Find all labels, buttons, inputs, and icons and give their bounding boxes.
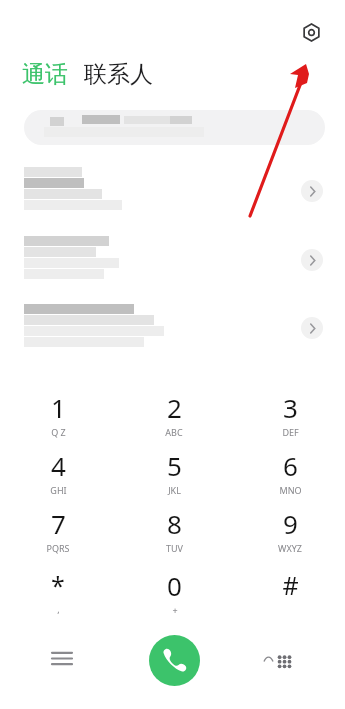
button[interactable]: 3 xyxy=(254,390,326,442)
staticText: WXYZ xyxy=(278,542,302,554)
button[interactable]: Call xyxy=(149,635,200,686)
staticText: , xyxy=(57,603,60,615)
staticText: * xyxy=(51,568,65,602)
button[interactable]: Details xyxy=(0,300,345,362)
staticText: 9 xyxy=(283,506,298,541)
button[interactable]: Hide keypad xyxy=(258,640,300,682)
staticText: DEF xyxy=(282,426,299,438)
button[interactable]: Menu xyxy=(42,638,82,678)
staticText: MNO xyxy=(279,484,302,496)
staticText: # xyxy=(282,568,299,602)
staticText: 3 xyxy=(283,390,298,425)
button[interactable]: Settings xyxy=(295,16,327,48)
button[interactable]: 2 xyxy=(138,390,210,442)
staticText: GHI xyxy=(50,484,67,496)
button[interactable]: 4 xyxy=(22,448,94,500)
button[interactable]: 0 xyxy=(138,568,210,620)
staticText: 7 xyxy=(51,506,66,541)
button[interactable]: Search xyxy=(24,110,325,145)
staticText: Q Z xyxy=(51,426,66,438)
staticText: 8 xyxy=(167,506,182,541)
staticText: 6 xyxy=(283,448,298,483)
staticText: PQRS xyxy=(46,542,70,554)
staticText: 通话 xyxy=(22,60,68,89)
staticText: ABC xyxy=(165,426,183,438)
staticText: 0 xyxy=(167,568,182,603)
button[interactable]: * xyxy=(22,568,94,620)
button[interactable]: 7 xyxy=(22,506,94,558)
button[interactable]: Details xyxy=(301,317,323,339)
button[interactable]: 1 xyxy=(22,390,94,442)
button[interactable]: Details xyxy=(301,249,323,271)
staticText: TUV xyxy=(166,542,183,554)
staticText: 5 xyxy=(167,448,182,483)
button[interactable]: # xyxy=(254,568,326,620)
button[interactable]: Details xyxy=(301,180,323,202)
staticText: 联系人 xyxy=(84,60,153,89)
button[interactable]: 9 xyxy=(254,506,326,558)
button[interactable]: 6 xyxy=(254,448,326,500)
button[interactable]: 5 xyxy=(138,448,210,500)
staticText: 2 xyxy=(167,390,182,425)
staticText: 1 xyxy=(51,390,66,425)
button[interactable]: Details xyxy=(0,232,345,294)
staticText: + xyxy=(172,604,178,616)
button[interactable]: Details xyxy=(0,163,345,225)
button[interactable]: 8 xyxy=(138,506,210,558)
staticText: JKL xyxy=(168,484,181,496)
button[interactable]: 通话 xyxy=(20,58,70,91)
staticText: 4 xyxy=(51,448,66,483)
button[interactable]: 联系人 xyxy=(82,58,155,91)
